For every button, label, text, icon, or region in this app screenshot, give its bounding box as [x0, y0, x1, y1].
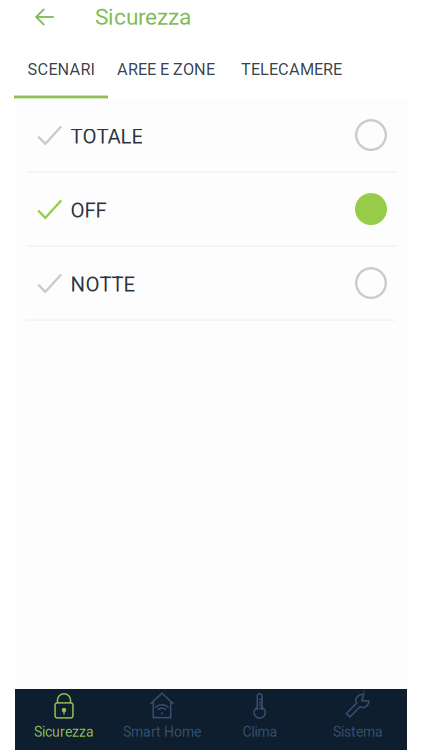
staticText: Sicurezza — [34, 724, 94, 740]
button[interactable]: Back — [27, 0, 63, 35]
button[interactable]: NOTTE — [15, 247, 407, 321]
staticText: TELECAMERE — [241, 60, 342, 79]
button[interactable]: AREE E ZONE — [108, 42, 226, 99]
button[interactable]: TELECAMERE — [226, 42, 355, 99]
staticText: SCENARI — [27, 60, 94, 79]
staticText: AREE E ZONE — [117, 60, 215, 79]
button[interactable]: Sistema — [309, 689, 407, 750]
button[interactable]: Sicurezza — [15, 689, 113, 750]
staticText: TOTALE — [70, 125, 143, 148]
staticText: Smart Home — [123, 724, 201, 740]
button[interactable]: TOTALE — [15, 99, 407, 173]
staticText: Sicurezza — [95, 4, 191, 30]
button[interactable]: Smart Home — [113, 689, 211, 750]
staticText: Clima — [242, 724, 277, 740]
button[interactable]: SCENARI — [14, 42, 108, 99]
staticText: Sistema — [333, 724, 383, 740]
staticText: OFF — [70, 199, 106, 222]
button[interactable]: Clima — [211, 689, 309, 750]
staticText: NOTTE — [70, 273, 135, 296]
button[interactable]: OFF — [15, 173, 407, 247]
